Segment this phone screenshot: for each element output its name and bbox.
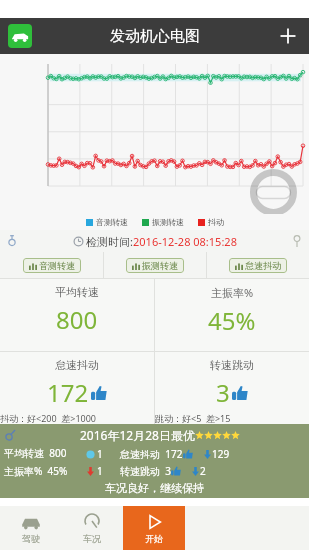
button[interactable]: App icon	[8, 24, 32, 48]
button[interactable]: 转速跳动	[155, 352, 309, 424]
staticText: 开始	[145, 533, 163, 544]
staticText: 转速跳动	[210, 358, 254, 372]
button[interactable]: 车况	[61, 506, 123, 550]
staticText: 平均转速	[55, 285, 99, 299]
staticText: 平均转速 800	[4, 446, 67, 460]
button[interactable]: 音测转速	[23, 258, 81, 273]
staticText: 音测转速	[39, 260, 75, 271]
staticText: 抖动	[208, 217, 224, 227]
staticText: 2016年12月28日最优	[80, 427, 195, 443]
staticText: 主振率% 45%	[4, 464, 68, 478]
staticText: 1	[97, 447, 103, 461]
staticText: 主振率%	[211, 285, 254, 300]
button[interactable]: Add	[277, 25, 299, 47]
staticText: 2	[200, 464, 206, 478]
button[interactable]: 怠速抖动	[0, 352, 154, 424]
button[interactable]: 开始	[123, 506, 185, 550]
staticText: 怠速抖动 172	[120, 447, 183, 461]
staticText: 跳动：好<5 差>15	[155, 412, 309, 424]
staticText: 振测转速	[142, 260, 178, 271]
button[interactable]: 怠速抖动	[229, 258, 287, 273]
staticText: 3	[216, 376, 230, 409]
staticText: 音测转速	[96, 217, 128, 227]
button[interactable]: 驾驶	[0, 506, 61, 550]
staticText: 抖动：好<200 差>1000	[0, 412, 154, 424]
staticText: 45%	[208, 304, 256, 337]
staticText: 怠速抖动	[55, 358, 99, 372]
staticText: 800	[56, 303, 98, 336]
staticText: 驾驶	[22, 533, 40, 544]
staticText: 2016-12-28 08:15:28	[133, 234, 237, 249]
staticText: 转速跳动 3	[120, 464, 171, 478]
staticText: 怠速抖动	[245, 260, 281, 271]
button[interactable]: 主振率%	[155, 279, 309, 351]
staticText: 车况	[83, 533, 101, 544]
staticText: 振测转速	[152, 217, 184, 227]
button[interactable]: 振测转速	[126, 258, 184, 273]
staticText: 172	[47, 376, 89, 409]
staticText: 车况良好，继续保持	[4, 481, 305, 495]
staticText: 检测时间:	[86, 234, 133, 249]
staticText: 129	[212, 447, 230, 461]
staticText: 1	[97, 464, 103, 478]
button[interactable]: 平均转速	[0, 279, 154, 351]
staticText: 发动机心电图	[110, 27, 200, 46]
